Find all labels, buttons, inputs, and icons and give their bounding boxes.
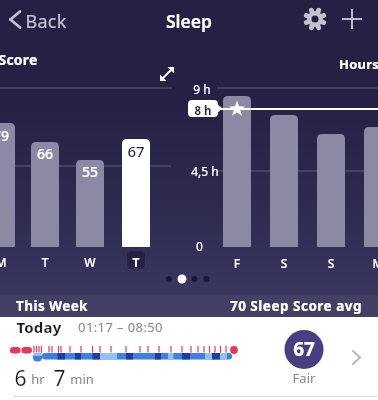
button[interactable] [338, 4, 366, 34]
button[interactable] [0, 295, 378, 317]
staticText: M [0, 254, 15, 270]
staticText: Sleep [0, 9, 378, 33]
staticText: S [317, 255, 345, 271]
staticText: 79 [0, 126, 15, 145]
staticText: 66 [31, 144, 59, 163]
staticText: T [127, 254, 145, 270]
staticText: Fair [284, 369, 324, 387]
staticText: 70 Sleep Score avg [162, 297, 362, 315]
staticText: 55 [76, 162, 104, 181]
staticText: 8 h [188, 103, 218, 119]
staticText: 6 [14, 364, 27, 393]
staticText: Today [16, 317, 62, 337]
staticText: Back [25, 9, 67, 34]
staticText: 7 [53, 364, 66, 393]
button[interactable] [0, 50, 180, 290]
staticText: F [223, 255, 251, 271]
staticText: 0 [196, 238, 203, 254]
staticText: T [31, 254, 59, 270]
staticText: 4,5 h [191, 163, 219, 179]
button[interactable] [0, 0, 70, 38]
staticText: Hours [339, 55, 378, 73]
staticText: 01:17 – 08:50 [78, 318, 163, 336]
button[interactable] [300, 4, 330, 34]
staticText: Score [0, 50, 38, 69]
button[interactable] [0, 317, 378, 400]
staticText: hr [31, 370, 45, 388]
staticText: S [270, 255, 298, 271]
staticText: 9 h [193, 81, 211, 97]
staticText: This Week [16, 297, 88, 315]
staticText: 67 [284, 336, 324, 362]
staticText: W [76, 254, 104, 270]
staticText: M [364, 255, 378, 271]
staticText: min [70, 370, 94, 388]
staticText: 67 [122, 141, 150, 161]
button[interactable] [185, 50, 378, 290]
